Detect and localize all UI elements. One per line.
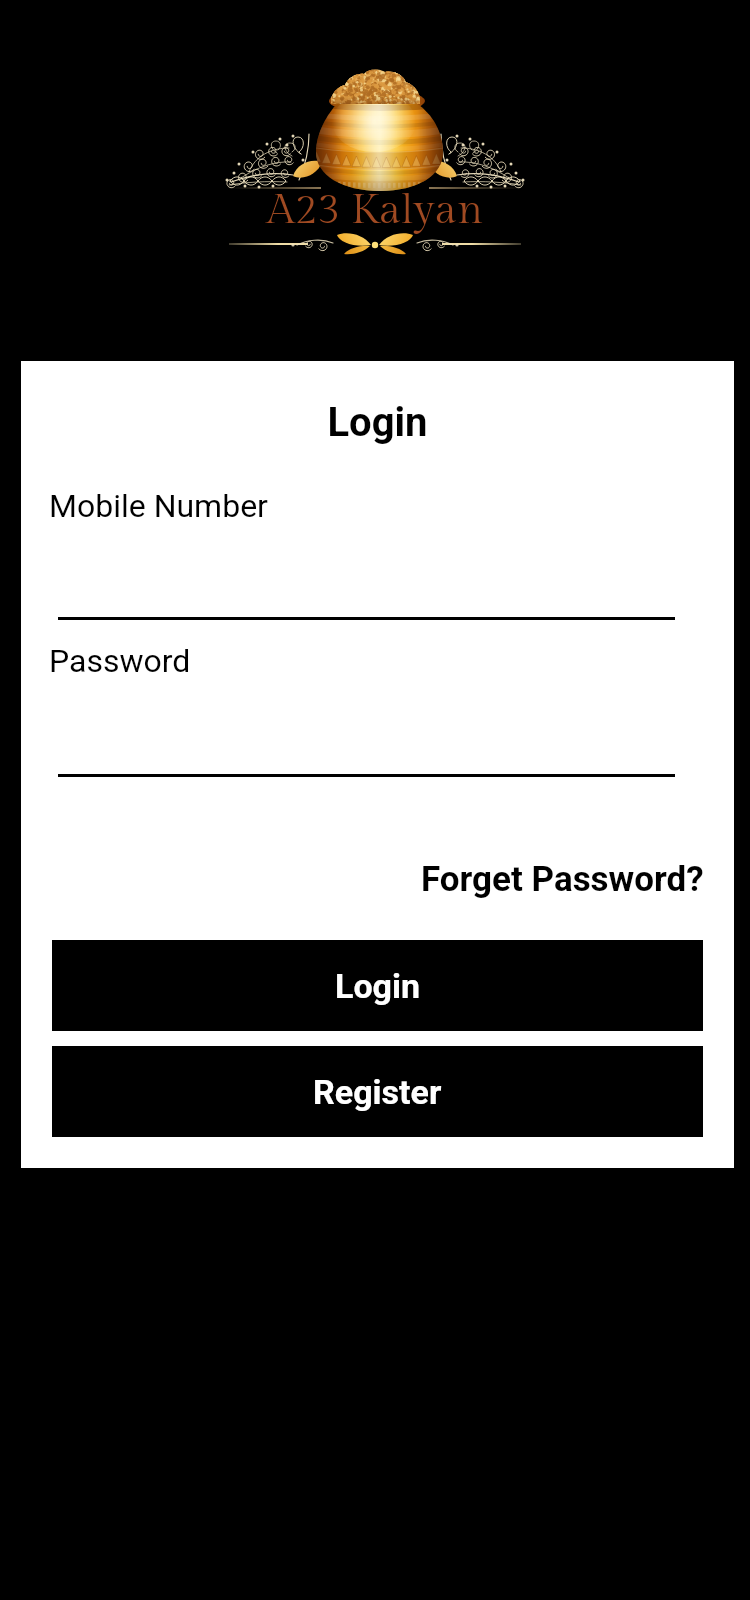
button[interactable]: Password	[49, 638, 675, 777]
staticText: Register	[313, 1072, 442, 1112]
staticText: Password	[49, 642, 191, 680]
staticText: Login	[335, 966, 421, 1006]
button[interactable]: Forget Password?	[419, 855, 706, 904]
button[interactable]: Mobile Number	[49, 481, 675, 620]
staticText: Login	[21, 399, 734, 446]
staticText: Mobile Number	[49, 487, 268, 525]
other: A23 Kalyan logo	[0, 0, 750, 270]
button[interactable]: Register	[52, 1046, 703, 1137]
button[interactable]: Login	[52, 940, 703, 1031]
staticText: A23 Kalyan	[0, 186, 750, 235]
